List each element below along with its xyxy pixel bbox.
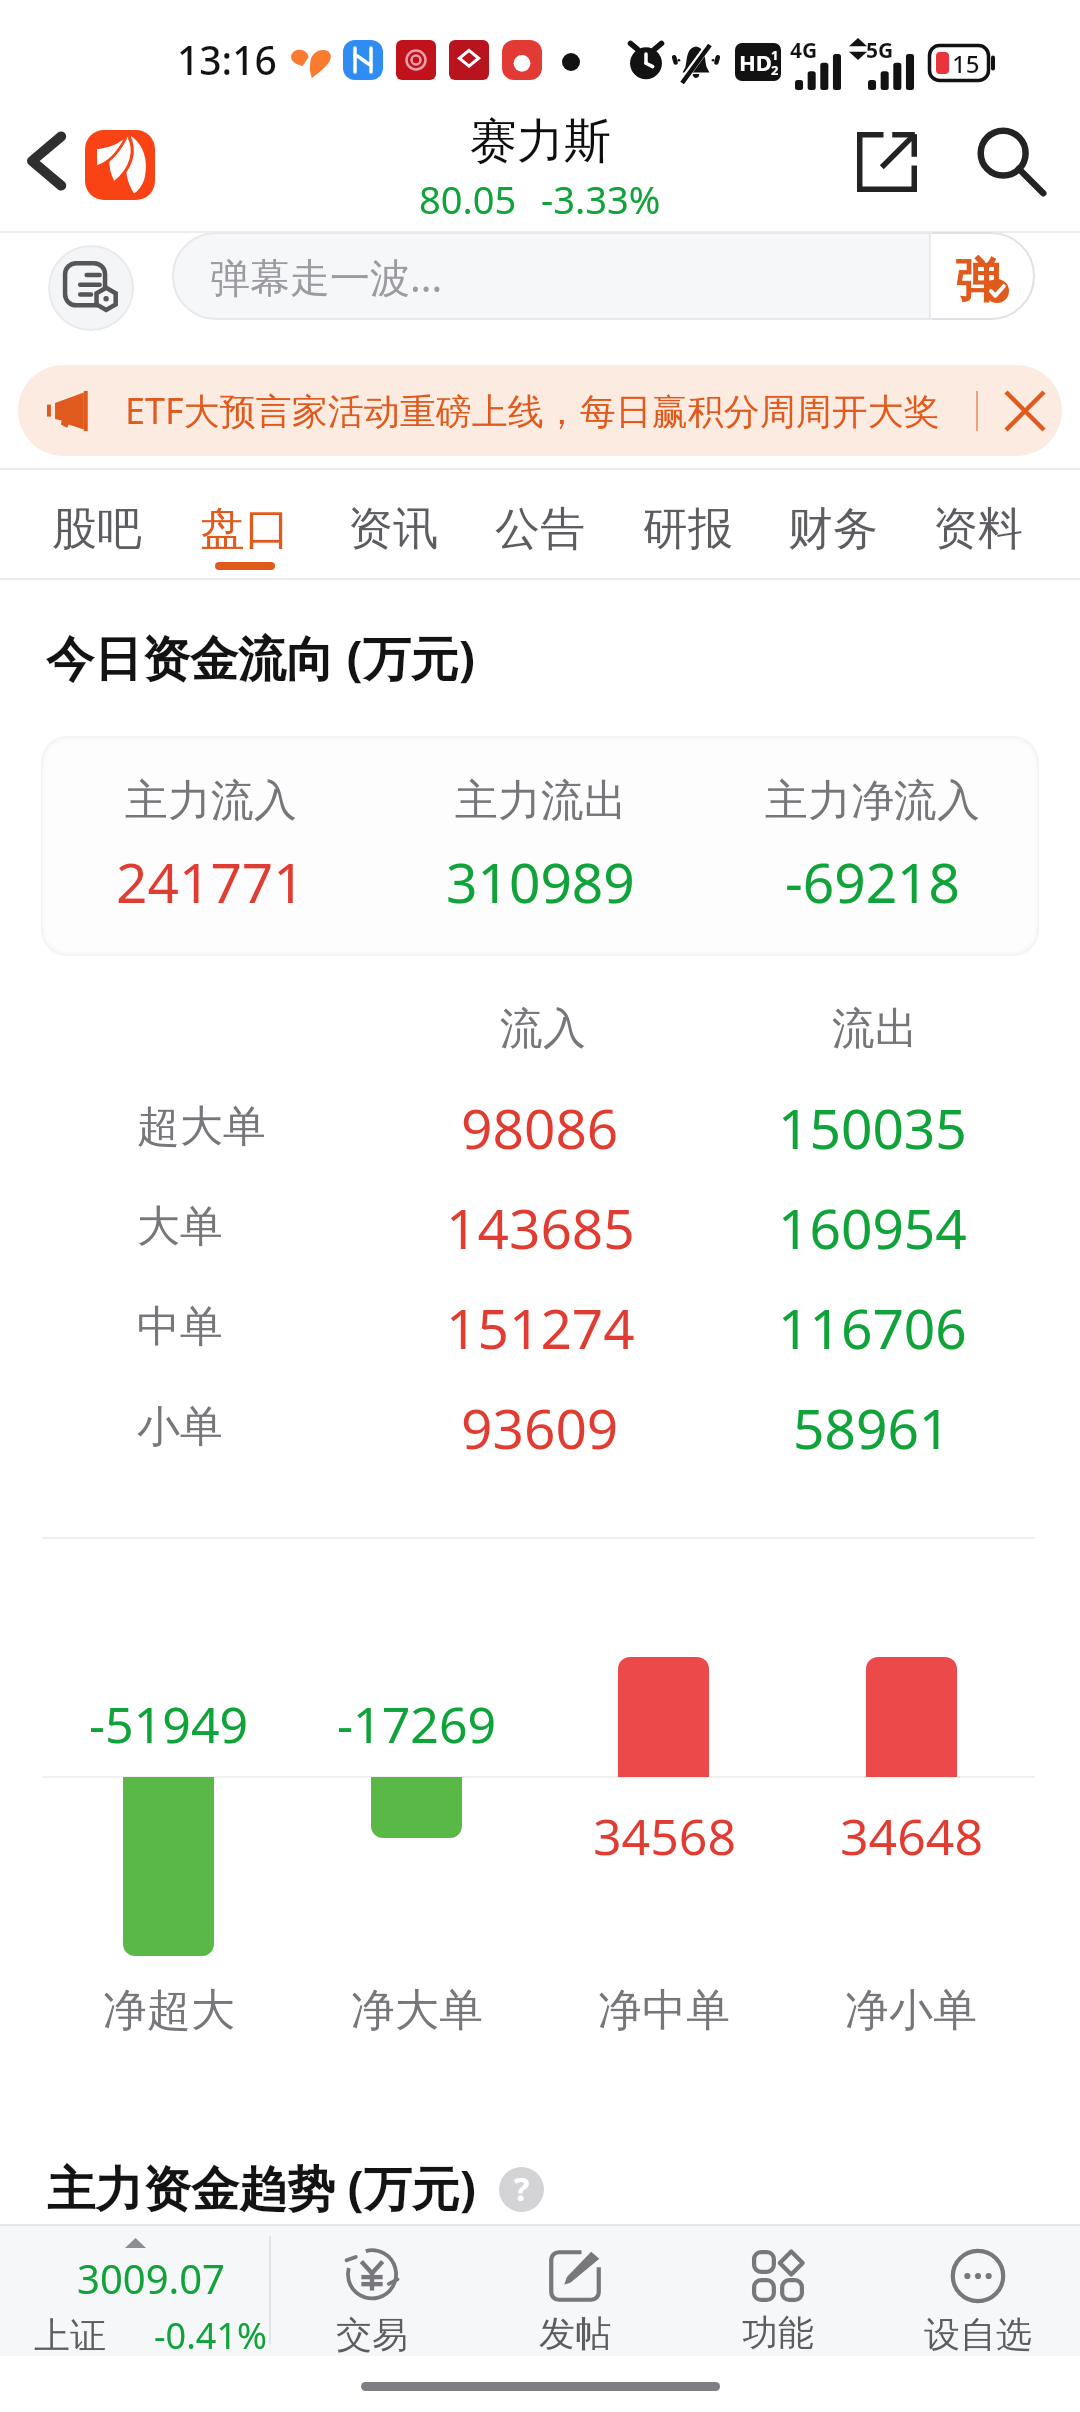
staticText: 13:16 <box>177 33 277 86</box>
button[interactable]: Send danmu <box>929 232 1035 320</box>
staticText: 143685 <box>446 1190 635 1265</box>
button[interactable]: Help <box>499 2167 544 2212</box>
staticText: 研报 <box>643 501 733 558</box>
staticText: 股吧 <box>52 501 142 558</box>
staticText: 241771 <box>116 844 305 919</box>
staticText: 58961 <box>793 1390 951 1465</box>
button[interactable]: 弹幕走一波... <box>172 232 1035 320</box>
button[interactable]: Share <box>845 120 929 204</box>
button[interactable]: 盘口 <box>171 470 319 578</box>
staticText: 大单 <box>137 1200 223 1254</box>
button[interactable]: 超大单 <box>0 1077 1080 1177</box>
staticText: 93609 <box>461 1390 619 1465</box>
button[interactable]: 研报 <box>614 470 762 578</box>
staticText: 主力净流入 <box>765 774 980 828</box>
staticText: 310989 <box>446 844 635 919</box>
staticText: 3009.07 <box>77 2251 225 2305</box>
staticText: 上证 <box>34 2313 106 2358</box>
button[interactable]: 公告 <box>466 470 614 578</box>
staticText: 116706 <box>778 1290 967 1365</box>
staticText: 15 <box>952 47 980 80</box>
staticText: 2 <box>771 61 779 79</box>
button[interactable]: Back <box>11 126 81 196</box>
staticText: -51949 <box>89 1690 249 1752</box>
button[interactable]: 财务 <box>759 470 907 578</box>
button[interactable]: Close banner <box>990 376 1060 446</box>
staticText: -0.41% <box>154 2311 267 2360</box>
staticText: 小单 <box>137 1400 223 1454</box>
staticText: 1 <box>771 46 779 64</box>
staticText: 34568 <box>593 1802 736 1864</box>
staticText: 98086 <box>461 1090 619 1165</box>
button[interactable]: 股吧 <box>23 470 171 578</box>
staticText: -3.33% <box>541 173 661 225</box>
staticText: 盘口 <box>200 501 290 558</box>
staticText: 功能 <box>742 2310 814 2355</box>
staticText: 80.05 <box>419 173 517 225</box>
staticText: 净大单 <box>351 1983 483 2038</box>
button[interactable]: ETF大预言家活动重磅上线，每日赢积分周周开大奖 <box>18 365 1062 456</box>
staticText: 资料 <box>933 501 1023 558</box>
staticText: 设自选 <box>924 2312 1032 2357</box>
button[interactable]: 交易 <box>272 2224 472 2356</box>
staticText: ? <box>514 2167 530 2211</box>
staticText: 发帖 <box>539 2311 611 2356</box>
staticText: 151274 <box>446 1290 635 1365</box>
staticText: 流出 <box>832 1002 918 1056</box>
staticText: 4G <box>790 36 818 65</box>
button[interactable]: 3009.07 <box>0 2224 269 2356</box>
staticText: -69218 <box>785 844 961 919</box>
staticText: HD <box>739 47 772 77</box>
button[interactable]: Search <box>968 118 1056 206</box>
staticText: 5G <box>866 36 894 65</box>
staticText: 34648 <box>840 1802 983 1864</box>
staticText: 交易 <box>336 2312 408 2357</box>
staticText: 主力资金趋势 (万元) <box>47 2155 477 2221</box>
staticText: 弹幕走一波... <box>210 249 443 304</box>
button[interactable]: 中单 <box>0 1277 1080 1377</box>
staticText: 净小单 <box>845 1983 977 2038</box>
button[interactable]: 资讯 <box>319 470 467 578</box>
button[interactable]: 主力流出 <box>375 740 705 952</box>
button[interactable]: 发帖 <box>475 2224 675 2356</box>
staticText: 财务 <box>788 501 878 558</box>
staticText: 150035 <box>778 1090 967 1165</box>
staticText: 流入 <box>500 1002 586 1056</box>
button[interactable]: 小单 <box>0 1377 1080 1477</box>
staticText: 资讯 <box>348 501 438 558</box>
staticText: 中单 <box>137 1300 223 1354</box>
staticText: 主力流出 <box>455 774 627 828</box>
staticText: 160954 <box>778 1190 967 1265</box>
staticText: 净超大 <box>103 1983 235 2038</box>
button[interactable]: 主力净流入 <box>707 740 1035 952</box>
staticText: -17269 <box>337 1690 497 1752</box>
button[interactable]: Home <box>85 130 155 200</box>
staticText: ETF大预言家活动重磅上线，每日赢积分周周开大奖 <box>125 386 940 435</box>
button[interactable]: 功能 <box>678 2224 878 2356</box>
staticText: 今日资金流向 (万元) <box>46 625 476 691</box>
staticText: 赛力斯 <box>470 112 611 171</box>
button[interactable]: 设自选 <box>878 2224 1078 2356</box>
button[interactable]: 主力流入 <box>45 740 375 952</box>
button[interactable]: 大单 <box>0 1177 1080 1277</box>
staticText: 超大单 <box>137 1100 266 1154</box>
staticText: 弹 <box>955 251 1003 311</box>
button[interactable]: Stock report <box>48 245 134 331</box>
button[interactable]: 资料 <box>904 470 1052 578</box>
staticText: 净中单 <box>598 1983 730 2038</box>
staticText: 公告 <box>495 501 585 558</box>
staticText: 主力流入 <box>125 774 297 828</box>
